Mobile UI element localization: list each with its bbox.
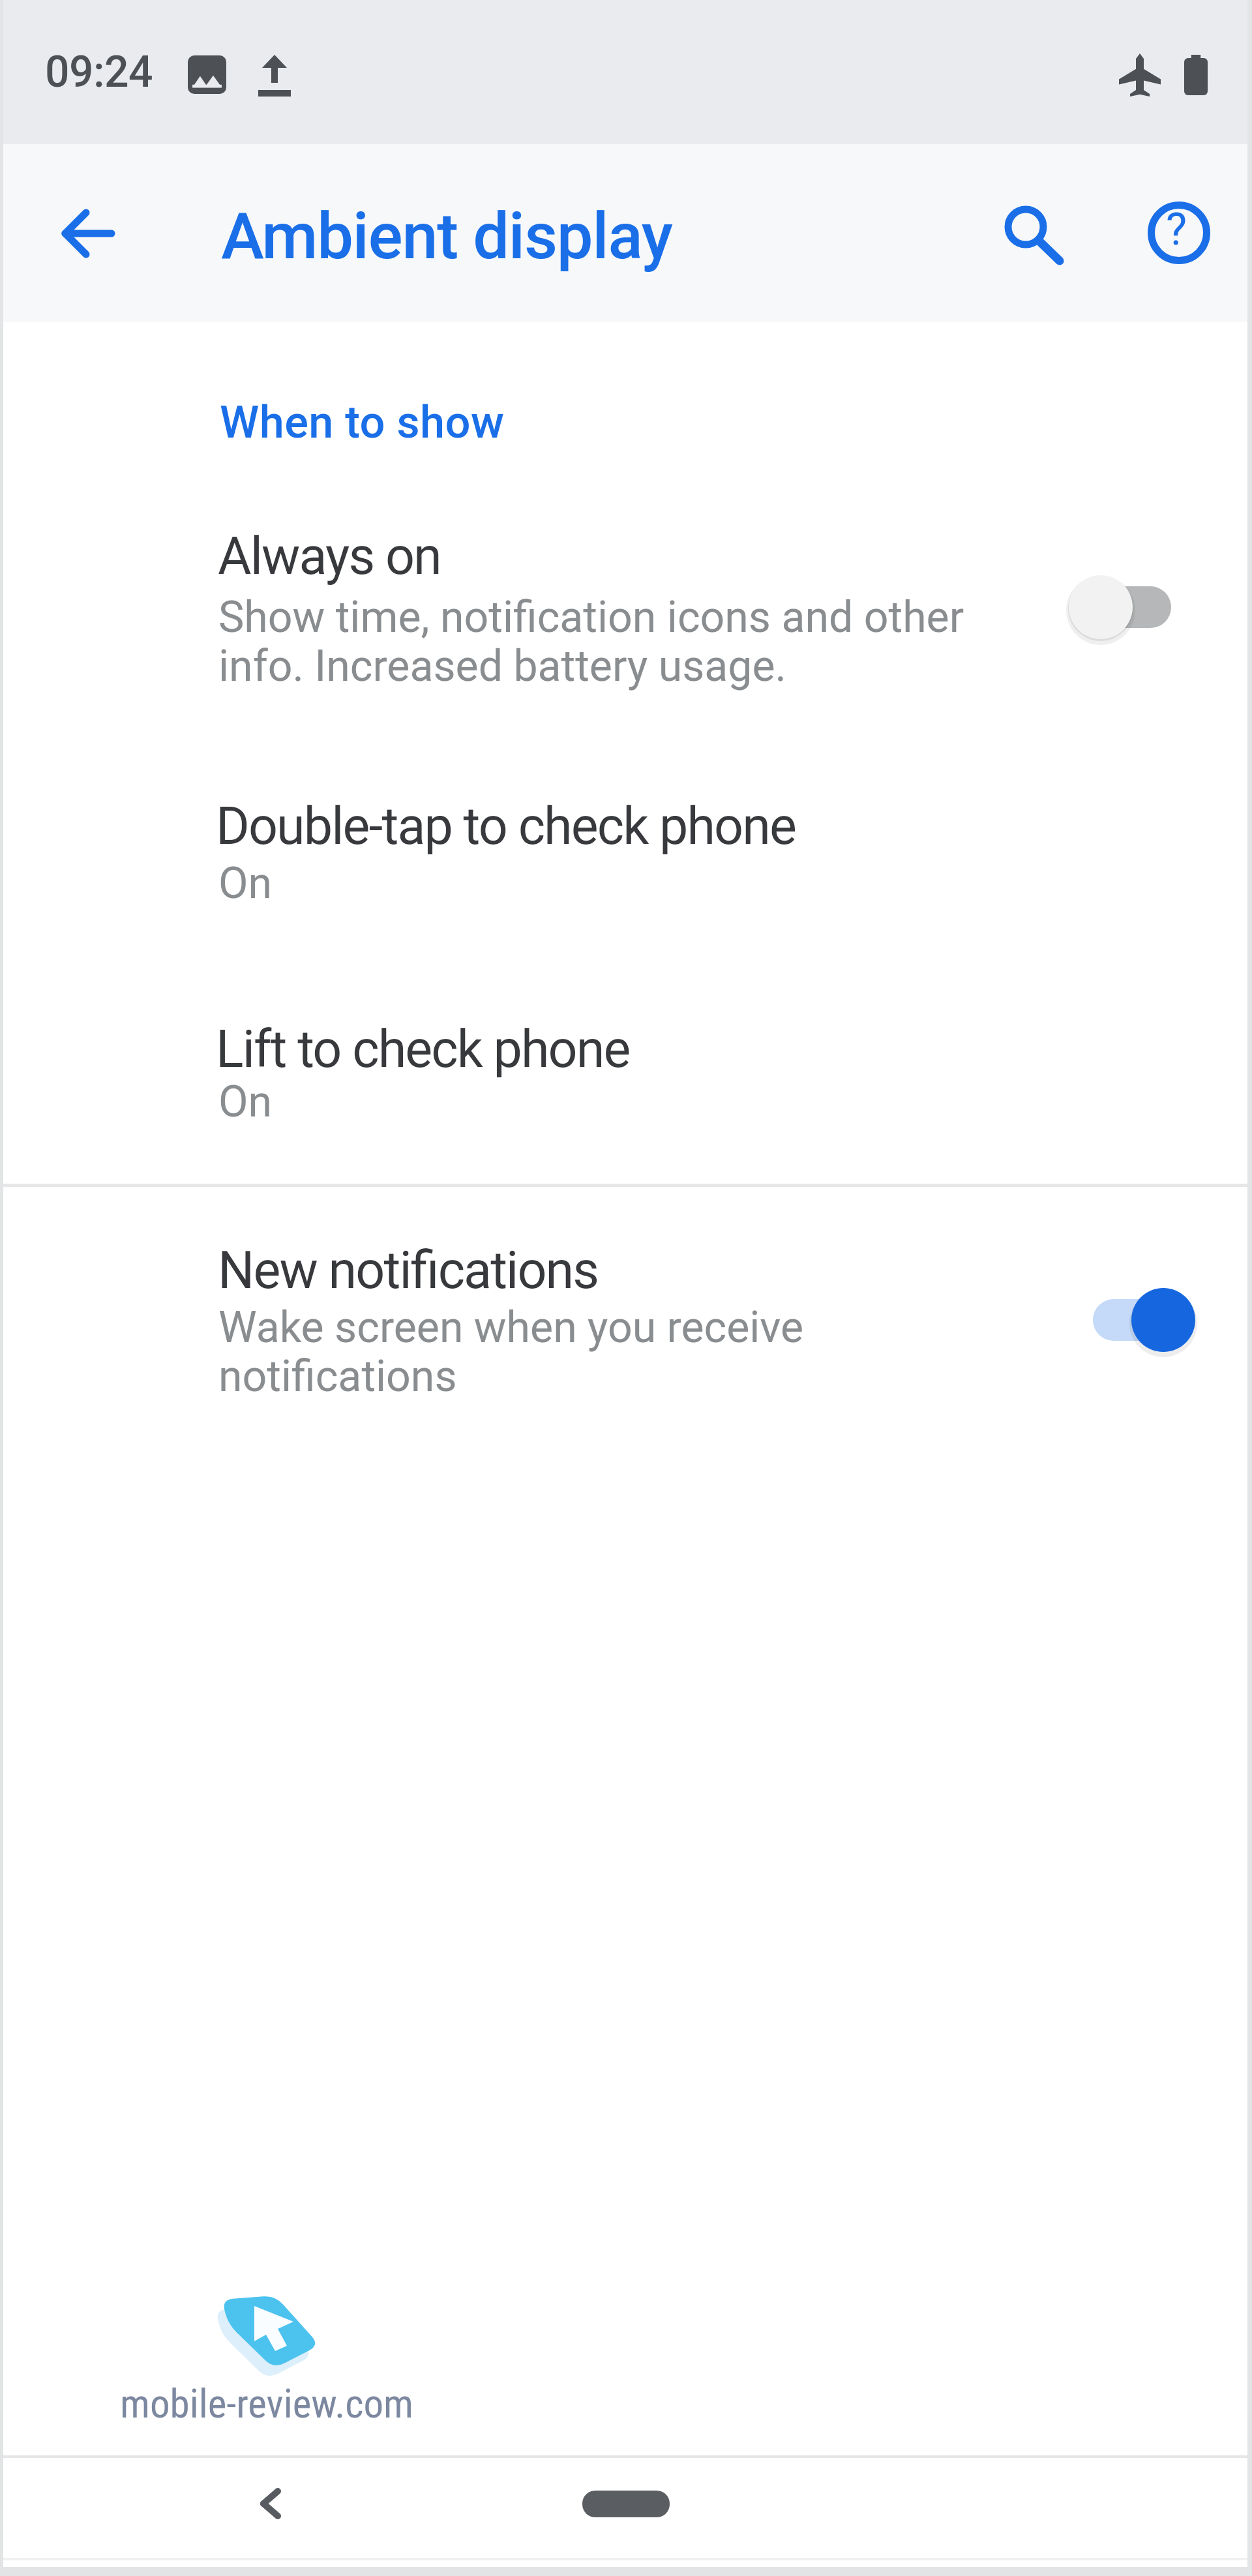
staticText: When to show <box>220 396 505 448</box>
button[interactable]: Off <box>1067 575 1196 639</box>
button[interactable]: Back <box>225 2458 316 2549</box>
staticText: mobile-review.com <box>120 2380 414 2427</box>
button[interactable]: Search <box>955 158 1096 299</box>
staticText: Lift to check phone <box>216 1019 630 1080</box>
staticText: New notifications <box>218 1240 599 1301</box>
staticText: ? <box>1166 203 1187 256</box>
button[interactable]: New notifications <box>0 1187 1252 1448</box>
staticText: Ambient display <box>221 198 672 274</box>
staticText: Double-tap to check phone <box>216 796 796 857</box>
button[interactable]: Lift to check phone <box>0 972 1252 1193</box>
staticText: On <box>218 1077 273 1128</box>
staticText: Show time, notification icons and other … <box>218 592 988 691</box>
staticText: Always on <box>218 526 441 587</box>
button[interactable]: Home <box>582 2491 670 2517</box>
button[interactable]: On <box>1067 1288 1196 1352</box>
button[interactable]: Double-tap to check phone <box>0 750 1252 972</box>
button[interactable]: Help <box>1109 158 1249 299</box>
staticText: Wake screen when you receive notificatio… <box>218 1302 857 1401</box>
staticText: On <box>218 858 273 909</box>
staticText: 09:24 <box>45 47 153 97</box>
button[interactable]: Navigate up <box>25 162 166 303</box>
button[interactable]: Always on <box>0 476 1252 730</box>
